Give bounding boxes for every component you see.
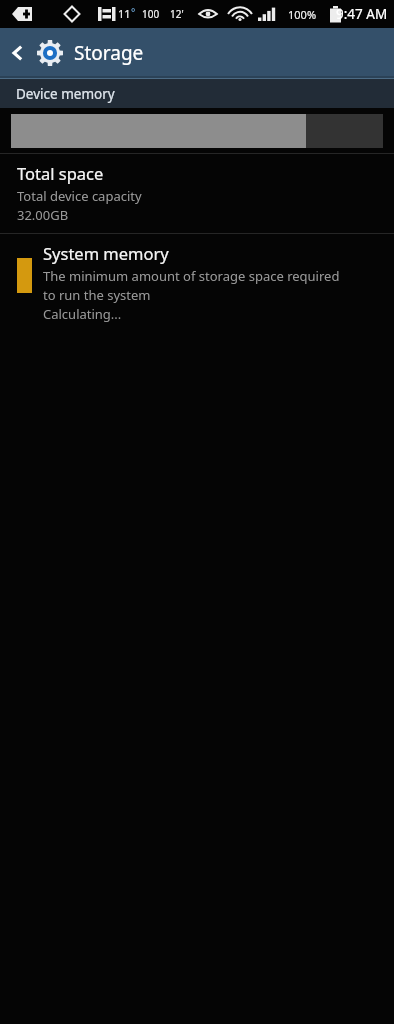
- staticText: 32.00GB: [17, 206, 69, 224]
- staticText: Total device capacity: [17, 187, 142, 205]
- staticText: Total space: [17, 162, 104, 184]
- staticText: 100: [142, 7, 160, 21]
- button[interactable]: Total space: [0, 154, 394, 233]
- staticText: 100%: [288, 7, 317, 22]
- staticText: to run the system: [43, 286, 151, 304]
- staticText: 9:47 AM: [336, 5, 388, 23]
- staticText: The minimum amount of storage space requ…: [43, 267, 340, 285]
- staticText: °: [131, 5, 136, 19]
- staticText: 12': [170, 7, 184, 21]
- staticText: System memory: [43, 242, 169, 264]
- button[interactable]: Back: [0, 28, 150, 78]
- button[interactable]: System memory: [0, 234, 394, 1024]
- staticText: Storage: [74, 40, 144, 66]
- staticText: Device memory: [16, 85, 115, 103]
- staticText: Calculating...: [43, 305, 122, 323]
- staticText: 11: [118, 6, 131, 21]
